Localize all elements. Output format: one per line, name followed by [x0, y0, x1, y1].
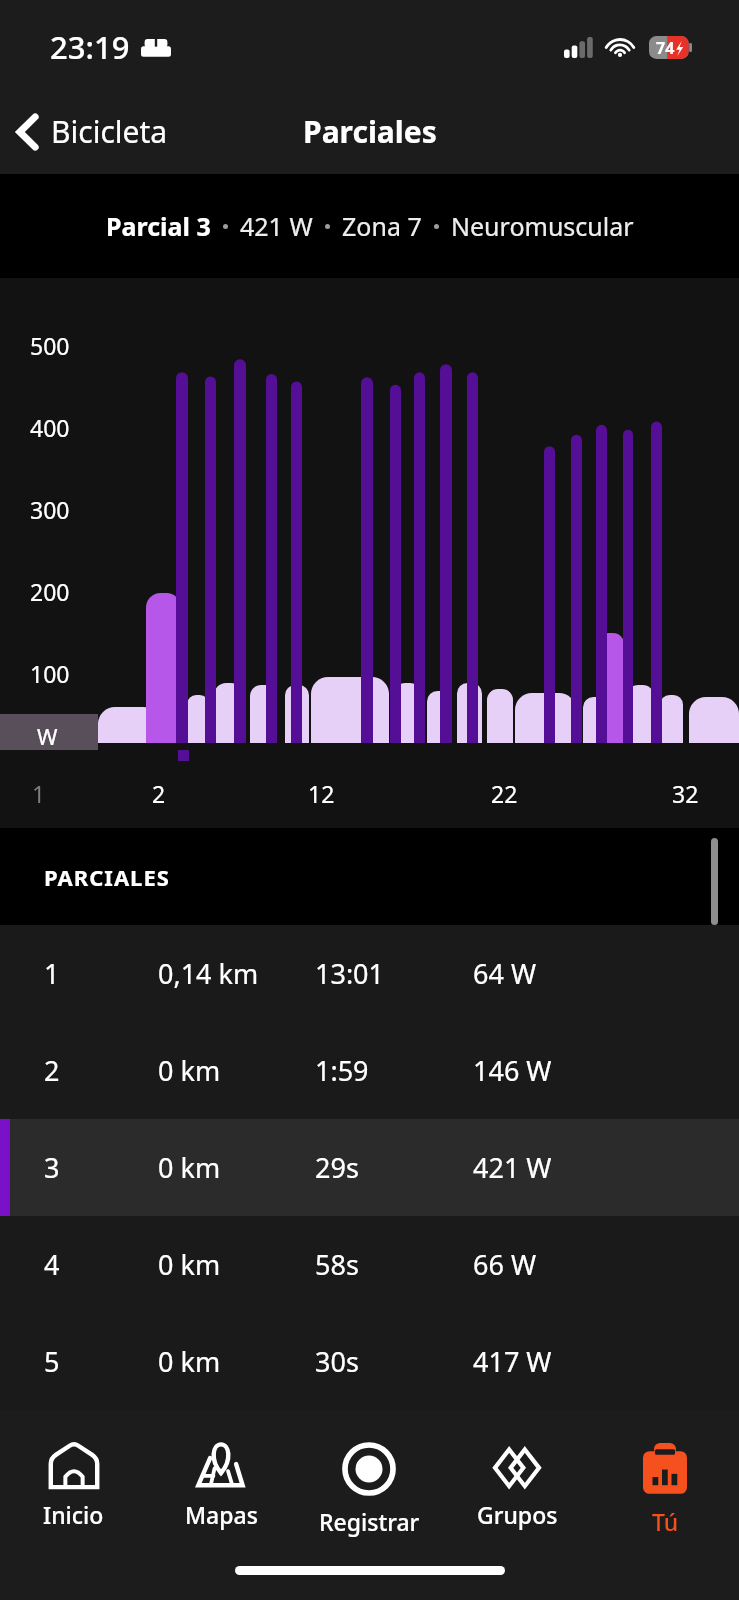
button[interactable]: 5 [0, 1313, 739, 1410]
staticText: 4 [44, 1246, 60, 1283]
staticText: 64 W [473, 955, 537, 992]
staticText: 100 [30, 658, 70, 689]
staticText: PARCIALES [44, 862, 170, 892]
staticText: Parcial 3 [106, 209, 211, 243]
staticText: 1:59 [315, 1052, 369, 1089]
staticText: 3 [44, 1149, 60, 1186]
staticText: Grupos [477, 1499, 558, 1530]
other: Registrar [342, 1442, 396, 1496]
button[interactable]: 2 [0, 1022, 739, 1119]
staticText: 0 km [158, 1343, 221, 1380]
button[interactable]: Bicicleta [0, 103, 182, 160]
other: Grupos [488, 1442, 546, 1489]
staticText: 1 [44, 955, 60, 992]
staticText: Tú [652, 1506, 679, 1537]
staticText: 300 [30, 494, 70, 525]
staticText: 30s [315, 1343, 359, 1380]
other: Tú [640, 1442, 690, 1496]
staticText: 146 W [473, 1052, 552, 1089]
staticText: 1 [32, 778, 46, 809]
staticText: 2 [152, 778, 166, 809]
staticText: Registrar [319, 1506, 420, 1537]
button[interactable]: Registrar [295, 1426, 443, 1548]
staticText: W [37, 721, 58, 751]
staticText: Mapas [185, 1499, 258, 1530]
button[interactable]: 4 [0, 1216, 739, 1313]
staticText: 66 W [473, 1246, 537, 1283]
staticText: Neuromuscular [451, 209, 634, 243]
staticText: 200 [30, 576, 70, 607]
staticText: 0,14 km [158, 955, 259, 992]
staticText: 13:01 [315, 955, 385, 992]
staticText: 0 km [158, 1246, 221, 1283]
staticText: 23:19 [50, 26, 130, 68]
button[interactable]: Mapas [147, 1426, 295, 1548]
staticText: Inicio [43, 1499, 104, 1530]
staticText: Bicicleta [51, 111, 168, 152]
staticText: 421 W [473, 1149, 552, 1186]
staticText: 58s [315, 1246, 359, 1283]
staticText: 5 [44, 1343, 60, 1380]
staticText: 500 [30, 330, 70, 361]
staticText: Zona 7 [342, 209, 422, 243]
staticText: 32 [672, 778, 699, 809]
button[interactable]: Tú [591, 1426, 739, 1548]
staticText: 0 km [158, 1052, 221, 1089]
staticText: Parciales [303, 111, 437, 152]
button[interactable]: Inicio [0, 1426, 147, 1548]
staticText: 421 W [240, 209, 313, 243]
staticText: 2 [44, 1052, 60, 1089]
staticText: 400 [30, 412, 70, 443]
staticText: 417 W [473, 1343, 552, 1380]
button[interactable]: Grupos [443, 1426, 591, 1548]
other: Inicio [47, 1442, 101, 1489]
button[interactable]: 3 [0, 1119, 739, 1216]
button[interactable]: 1 [0, 925, 739, 1022]
staticText: 0 km [158, 1149, 221, 1186]
staticText: 12 [308, 778, 335, 809]
staticText: 29s [315, 1149, 359, 1186]
staticText: 74 [656, 37, 675, 59]
staticText: 22 [491, 778, 518, 809]
other: Mapas [194, 1442, 248, 1489]
